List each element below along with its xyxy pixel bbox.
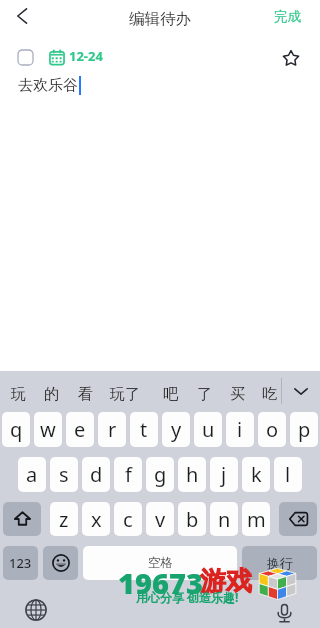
button[interactable]: b [178,502,206,536]
staticText: 游戏 [200,565,252,598]
staticText: h [186,461,199,488]
button[interactable]: Back [6,0,38,32]
staticText: p [298,416,311,443]
button[interactable]: l [274,457,302,492]
button[interactable]: Backspace [279,502,317,536]
staticText: 玩 [11,385,26,404]
button[interactable]: Shift [3,502,41,536]
staticText: k [251,461,262,488]
button[interactable]: w [34,412,62,447]
staticText: 吃 [262,385,277,404]
staticText: 吧 [163,385,178,404]
staticText: 去欢乐谷 [18,76,78,95]
button[interactable]: 完成 [274,8,301,25]
button[interactable]: m [242,502,270,536]
button[interactable]: x [82,502,110,536]
staticText: v [155,506,166,533]
button[interactable]: 了 [191,374,217,415]
button[interactable]: n [210,502,238,536]
staticText: a [26,461,38,488]
staticText: e [74,416,86,443]
button[interactable]: p [290,412,318,447]
staticText: z [59,506,69,533]
staticText: s [59,461,69,488]
staticText: g [154,461,167,488]
staticText: 12-24 [69,47,103,65]
button[interactable]: y [162,412,190,447]
button[interactable]: a [18,457,46,492]
staticText: t [140,416,148,443]
button[interactable]: Voice input [269,598,299,628]
button[interactable]: Star [278,45,304,71]
button[interactable]: 玩了 [105,374,145,415]
button[interactable]: 看 [72,374,98,415]
staticText: 玩了 [110,385,140,404]
button[interactable]: c [114,502,142,536]
staticText: d [90,461,103,488]
staticText: b [186,506,199,533]
button[interactable]: Mark complete [13,45,37,69]
button[interactable]: o [258,412,286,447]
staticText: 19673 [118,563,203,602]
button[interactable]: 买 [224,374,250,415]
button[interactable]: 玩 [5,374,31,415]
staticText: 空格 [148,555,173,571]
button[interactable]: s [50,457,78,492]
button[interactable]: j [210,457,238,492]
button[interactable]: r [98,412,126,447]
staticText: f [125,461,132,488]
staticText: 编辑待办 [129,9,191,29]
button[interactable]: 吧 [157,374,183,415]
button[interactable]: v [146,502,174,536]
staticText: 的 [44,385,59,404]
staticText: 123 [9,554,32,572]
button[interactable]: Switch language [20,594,51,625]
staticText: 了 [197,385,212,404]
button[interactable]: i [226,412,254,447]
button[interactable]: 吃 [256,374,282,415]
button[interactable]: e [66,412,94,447]
button[interactable]: d [82,457,110,492]
button[interactable]: More candidates [286,371,316,412]
staticText: q [10,416,23,443]
button[interactable]: 空格 [83,546,237,580]
staticText: n [218,506,231,533]
staticText: 用心分享 创造乐趣! [136,589,239,605]
button[interactable]: Emoji [43,546,78,580]
button[interactable]: u [194,412,222,447]
staticText: o [266,416,279,443]
staticText: m [247,506,266,533]
staticText: u [202,416,215,443]
staticText: y [171,416,182,443]
staticText: 买 [230,385,245,404]
staticText: j [221,461,227,488]
staticText: i [237,416,243,443]
button[interactable]: t [130,412,158,447]
staticText: r [108,416,117,443]
staticText: 换行 [267,555,293,571]
button[interactable]: h [178,457,206,492]
button[interactable]: 换行 [242,546,317,580]
button[interactable]: k [242,457,270,492]
staticText: w [40,416,56,443]
staticText: 看 [78,385,93,404]
button[interactable]: 的 [38,374,64,415]
staticText: c [123,506,133,533]
button[interactable]: g [146,457,174,492]
staticText: x [91,506,102,533]
button[interactable]: 123 [3,546,38,580]
button[interactable]: q [2,412,30,447]
staticText: 完成 [274,8,301,25]
button[interactable]: f [114,457,142,492]
button[interactable]: z [50,502,78,536]
staticText: l [285,461,291,488]
